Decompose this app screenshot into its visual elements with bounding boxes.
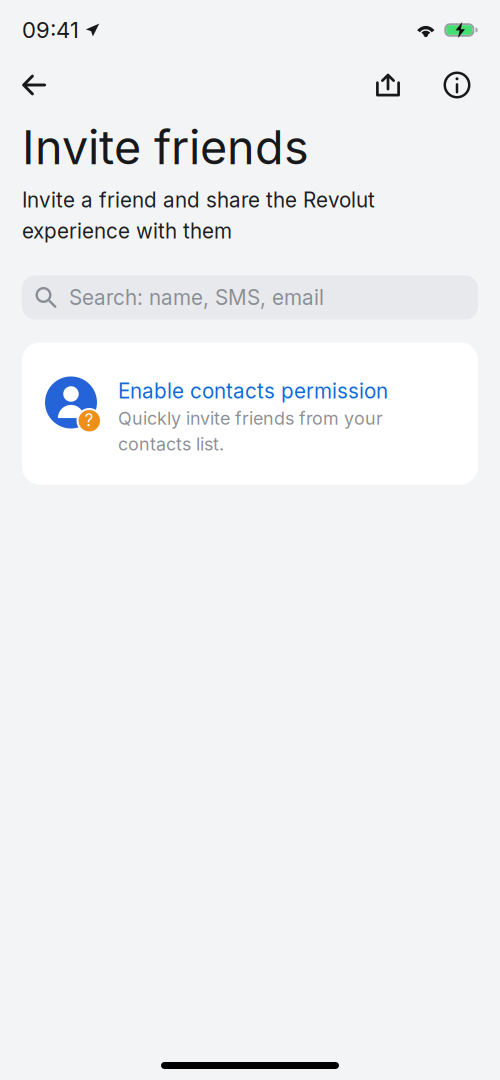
button[interactable]: About invite friends [434,62,480,108]
staticText: 09:41 [22,17,79,43]
staticText: Enable contacts permission [118,378,388,403]
button[interactable]: ? [22,342,478,485]
button[interactable]: Search: name, SMS, email [22,275,478,319]
button[interactable]: Share [365,62,411,108]
staticText: Search: name, SMS, email [69,285,324,310]
staticText: Invite a friend and share the Revolut ex… [22,187,375,243]
staticText: Quickly invite friends from your contact… [118,407,383,455]
button[interactable]: Back [11,62,57,108]
staticText: Invite friends [22,119,309,175]
staticText: ? [85,410,94,430]
